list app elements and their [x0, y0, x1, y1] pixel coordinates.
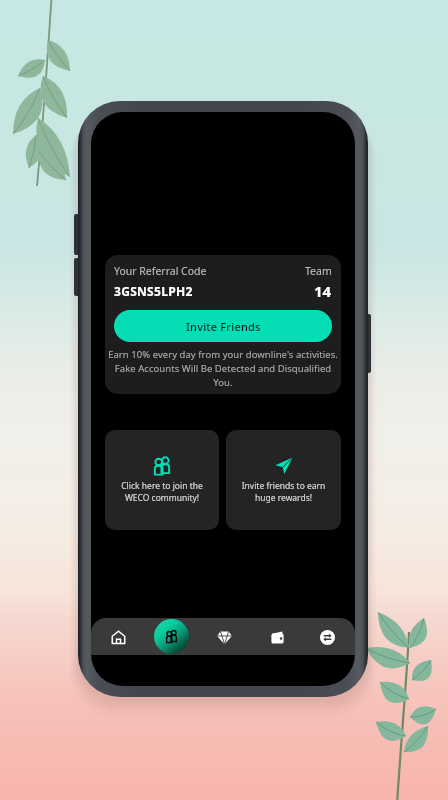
button[interactable]: Rewards — [209, 622, 239, 652]
button[interactable]: Invite friends to earn huge rewards! — [226, 430, 341, 530]
staticText: Your Referral Code — [114, 264, 207, 278]
staticText: 3GSNS5LPH2 — [114, 283, 193, 299]
staticText: Earn 10% every day from your downline's … — [105, 348, 341, 389]
staticText: Team — [305, 264, 332, 278]
button[interactable]: Invite Friends — [114, 310, 332, 342]
staticText: Click here to join the WECO community! — [105, 480, 219, 504]
button[interactable]: Exchange — [312, 622, 342, 652]
button[interactable]: Team — [154, 619, 189, 654]
staticText: 14 — [314, 281, 332, 301]
staticText: Invite Friends — [186, 319, 261, 334]
button[interactable]: Wallet — [262, 622, 292, 652]
button[interactable]: Click here to join the WECO community! — [105, 430, 219, 530]
button[interactable]: Home — [103, 622, 133, 652]
staticText: Invite friends to earn huge rewards! — [226, 480, 341, 504]
